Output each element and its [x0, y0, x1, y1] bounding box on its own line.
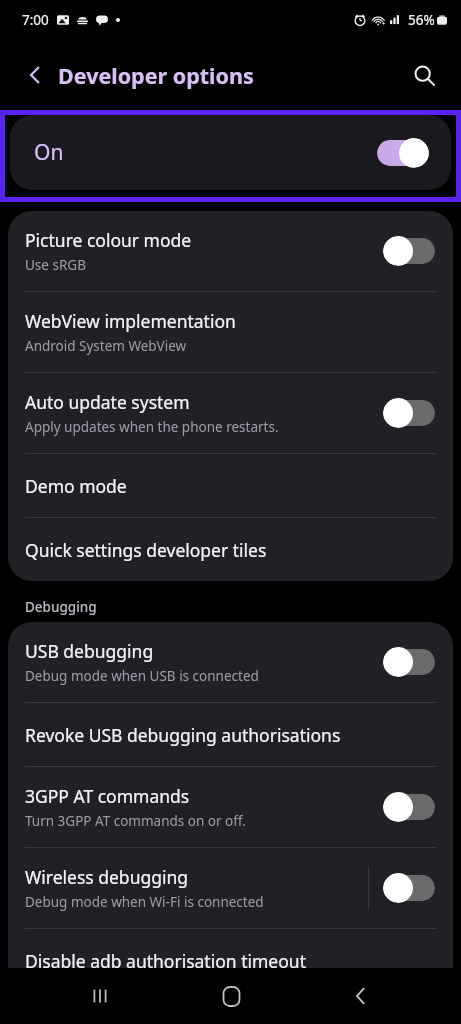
button[interactable]: Revoke USB debugging authorisations [8, 703, 453, 766]
button[interactable]: Home [201, 968, 261, 1024]
staticText: Android System WebView [25, 337, 187, 355]
button[interactable]: Picture colour mode [8, 211, 453, 291]
staticText: Picture colour mode [25, 228, 192, 252]
staticText: 3GPP AT commands [25, 784, 190, 808]
staticText: On [34, 138, 377, 167]
staticText: Quick settings developer tiles [25, 538, 267, 562]
button[interactable]: Toggle off [383, 792, 435, 822]
button[interactable]: Toggle off [383, 236, 435, 266]
staticText: Debug mode when Wi-Fi is connected [25, 893, 264, 911]
staticText: USB debugging [25, 639, 154, 663]
button[interactable]: 3GPP AT commands [8, 767, 453, 847]
button[interactable]: USB debugging [8, 622, 453, 702]
button[interactable]: Back [12, 52, 58, 98]
button[interactable]: Back [331, 968, 391, 1024]
staticText: WebView implementation [25, 309, 236, 333]
button[interactable]: Search [401, 52, 447, 98]
button[interactable]: Toggle off [383, 398, 435, 428]
button[interactable]: Auto update system [8, 373, 453, 453]
button[interactable]: Toggle on [377, 138, 429, 168]
staticText: Developer options [58, 61, 254, 90]
staticText: Use sRGB [25, 256, 86, 274]
staticText: Apply updates when the phone restarts. [25, 418, 279, 436]
staticText: Auto update system [25, 390, 190, 414]
button[interactable]: Toggle off [383, 647, 435, 677]
button[interactable]: Demo mode [8, 454, 453, 517]
button[interactable]: Recents [70, 968, 130, 1024]
button[interactable]: Toggle off [383, 873, 435, 903]
staticText: Disable adb authorisation timeout [25, 949, 306, 973]
staticText: 56% [408, 11, 435, 29]
button[interactable]: On [10, 115, 451, 190]
staticText: Wireless debugging [25, 865, 189, 889]
button[interactable]: Disable adb authorisation timeout [8, 929, 453, 992]
staticText: Revoke USB debugging authorisations [25, 723, 341, 747]
button[interactable]: WebView implementation [8, 292, 453, 372]
button[interactable]: Quick settings developer tiles [8, 518, 453, 581]
button[interactable]: Wireless debugging [8, 848, 453, 928]
staticText: 7:00 [22, 11, 49, 29]
staticText: Debug mode when USB is connected [25, 667, 259, 685]
staticText: Debugging [25, 598, 97, 616]
staticText: Turn 3GPP AT commands on or off. [25, 812, 246, 830]
staticText: Demo mode [25, 474, 127, 498]
